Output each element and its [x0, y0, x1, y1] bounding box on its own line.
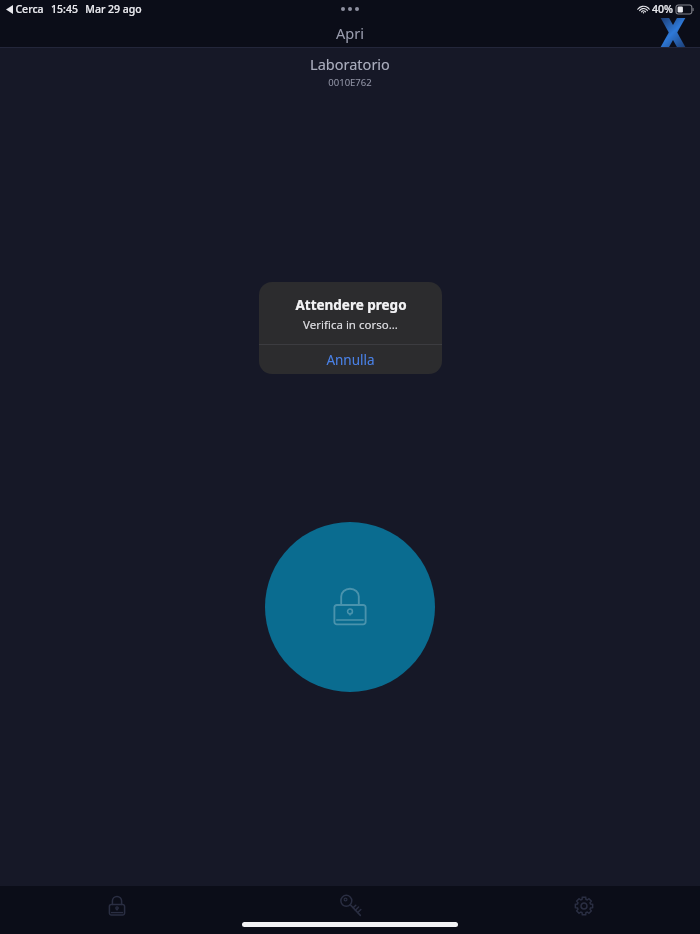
- staticText: 15:45: [51, 2, 78, 16]
- staticText: 0010E762: [328, 76, 372, 89]
- staticText: Verifica in corso...: [303, 317, 398, 333]
- staticText: Cerca: [15, 2, 44, 16]
- button[interactable]: Apri serratura: [265, 522, 435, 692]
- staticText: Laboratorio: [310, 54, 390, 74]
- button[interactable]: Logo: [658, 18, 688, 47]
- staticText: 40%: [652, 2, 673, 16]
- staticText: Apri: [336, 23, 364, 43]
- staticText: Mar 29 ago: [85, 2, 142, 16]
- button[interactable]: Serrature: [0, 886, 234, 926]
- button[interactable]: Annulla: [259, 345, 442, 374]
- staticText: Annulla: [326, 351, 375, 369]
- staticText: Attendere prego: [295, 296, 407, 314]
- button[interactable]: Impostazioni: [467, 886, 700, 926]
- button[interactable]: Chiavi: [234, 886, 467, 926]
